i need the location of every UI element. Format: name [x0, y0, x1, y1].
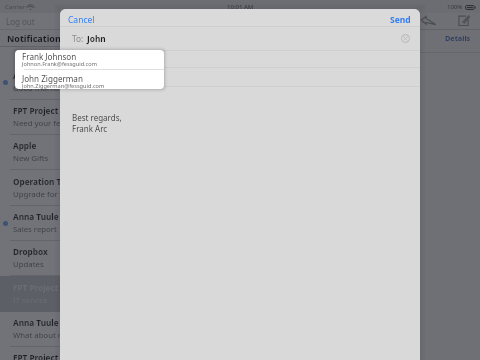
staticText: Anna Tuule	[13, 211, 59, 222]
button[interactable]: FPT Project	[0, 346, 160, 360]
staticText: Updates	[13, 259, 44, 270]
button[interactable]: Log out	[0, 14, 41, 29]
button[interactable]: To:	[60, 27, 420, 50]
staticText: Anna Tuule	[13, 70, 59, 81]
staticText: Send	[390, 14, 411, 25]
staticText: 10:01 AM	[227, 3, 254, 11]
button[interactable]: Operation Team	[0, 170, 160, 206]
staticText: Johnon.Frank@fessguid.com	[22, 60, 97, 68]
staticText: 100%	[447, 3, 463, 11]
staticText: Need your feedback	[13, 118, 87, 129]
button[interactable]: Dropbox	[0, 240, 160, 276]
staticText: Cancel	[68, 14, 95, 25]
button[interactable]: Send	[382, 9, 420, 26]
staticText: John.Ziggerman@fessguid.com	[22, 82, 105, 89]
staticText: Upgrade for you	[13, 189, 74, 200]
button[interactable]: FPT Project	[0, 276, 160, 312]
staticText: John Ziggerman	[22, 73, 83, 84]
button[interactable]: FPT Project	[0, 99, 160, 135]
button[interactable]: Anna Tuule	[0, 205, 160, 241]
staticText: Sales report	[13, 224, 57, 235]
staticText: What about new?	[13, 330, 77, 341]
staticText: Good morning	[13, 83, 67, 94]
staticText: New Gifts	[13, 153, 49, 164]
button[interactable]	[60, 68, 420, 86]
staticText: FPT Project	[13, 352, 59, 360]
button[interactable]: Anna Tuule	[0, 64, 160, 100]
button[interactable]: Details	[440, 30, 480, 45]
staticText: Inbox	[69, 16, 92, 27]
staticText: Dropbox	[13, 246, 48, 257]
button[interactable]: Anna Tuule	[0, 311, 160, 347]
staticText: Notification	[7, 32, 61, 44]
button[interactable]: Compose	[456, 13, 470, 27]
button[interactable]	[60, 51, 420, 67]
staticText: Anna Tuule	[13, 317, 59, 328]
button[interactable]: Clear	[401, 34, 410, 43]
staticText: Log out	[6, 16, 35, 27]
staticText: To:	[72, 33, 84, 44]
staticText: Operation Team	[13, 176, 79, 187]
staticText: Apple	[13, 140, 37, 151]
button[interactable]: Reply	[420, 13, 437, 27]
staticText: Frank Arc	[72, 123, 108, 134]
button[interactable]: Apple	[0, 134, 160, 170]
staticText: Carrier	[5, 3, 25, 11]
staticText: John	[87, 33, 106, 44]
staticText: Frank Johnson	[22, 51, 77, 62]
staticText: FPT Project	[13, 105, 59, 116]
staticText: Best regards,	[72, 112, 122, 123]
button[interactable]: Cancel	[60, 9, 103, 26]
button[interactable]: John Ziggerman	[15, 70, 164, 89]
staticText: FPT Project	[13, 282, 59, 293]
staticText: Details	[445, 33, 471, 43]
button[interactable]: Frank Johnson	[15, 50, 164, 69]
